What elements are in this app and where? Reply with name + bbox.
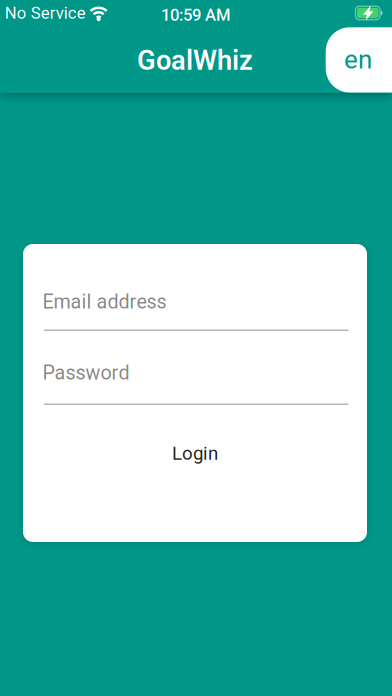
button[interactable]: Change language <box>326 27 392 92</box>
button[interactable]: Login <box>156 432 234 474</box>
button[interactable]: Email address <box>44 271 348 331</box>
staticText: Password <box>42 361 129 384</box>
staticText: 10:59 AM <box>161 5 231 25</box>
staticText: No Service <box>5 3 86 23</box>
staticText: GoalWhiz <box>137 44 253 76</box>
button[interactable]: Password <box>44 345 348 405</box>
staticText: Email address <box>42 290 166 313</box>
staticText: Login <box>172 442 218 464</box>
staticText: en <box>344 44 372 75</box>
